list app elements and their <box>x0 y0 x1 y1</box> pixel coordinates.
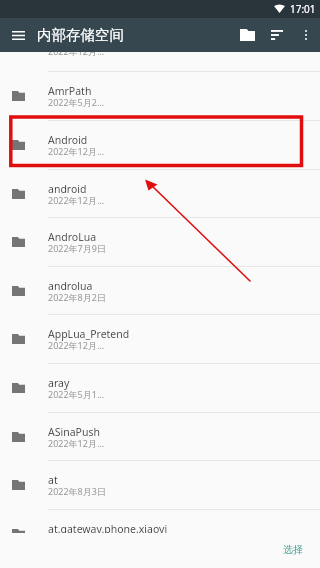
button[interactable]: Android <box>0 121 320 169</box>
button[interactable]: Sort <box>262 18 292 52</box>
button[interactable]: at.gateway.phone.xiaoyi <box>0 510 320 533</box>
staticText: 2022年7月9日 <box>48 242 106 254</box>
button[interactable]: 选择 <box>277 540 309 559</box>
staticText: ASinaPush <box>48 425 100 439</box>
button[interactable]: androlua <box>0 267 320 315</box>
staticText: 2022年12月… <box>48 194 105 206</box>
staticText: 选择 <box>283 543 303 556</box>
button[interactable]: ASinaPush <box>0 413 320 461</box>
staticText: 2022年8月2日 <box>48 291 106 303</box>
button[interactable]: New folder <box>233 18 262 52</box>
staticText: 2022年12月… <box>48 339 105 351</box>
staticText: 2022年12月… <box>48 145 105 157</box>
button[interactable]: AlipayGphone <box>0 21 320 69</box>
staticText: aray <box>48 376 70 390</box>
staticText: 17:01 <box>290 2 316 16</box>
button[interactable]: AlipayGphone <box>0 52 320 71</box>
button[interactable]: More options <box>292 18 320 52</box>
staticText: 内部存储空间 <box>37 26 124 44</box>
staticText: 2022年5月2… <box>48 96 105 108</box>
staticText: AndroLua <box>48 230 97 244</box>
button[interactable]: AndroLua <box>0 218 320 266</box>
staticText: 2022年8月3日 <box>48 485 106 497</box>
button[interactable]: AppLua_Pretend <box>0 315 320 363</box>
staticText: androlua <box>48 279 93 293</box>
button[interactable]: android <box>0 170 320 218</box>
button[interactable]: AmrPath <box>0 72 320 120</box>
staticText: at.gateway.phone.xiaoyi <box>48 522 168 533</box>
staticText: AppLua_Pretend <box>48 327 130 341</box>
button[interactable]: Open navigation drawer <box>0 18 37 52</box>
staticText: AlipayGphone <box>48 33 118 47</box>
staticText: 2022年12月… <box>48 45 105 57</box>
staticText: 2022年5月1… <box>48 388 105 400</box>
staticText: android <box>48 182 87 196</box>
staticText: at <box>48 473 58 487</box>
staticText: AmrPath <box>48 84 92 98</box>
staticText: Android <box>48 133 88 147</box>
staticText: 2022年12月… <box>48 437 105 449</box>
button[interactable]: at <box>0 461 320 509</box>
button[interactable]: aray <box>0 364 320 412</box>
